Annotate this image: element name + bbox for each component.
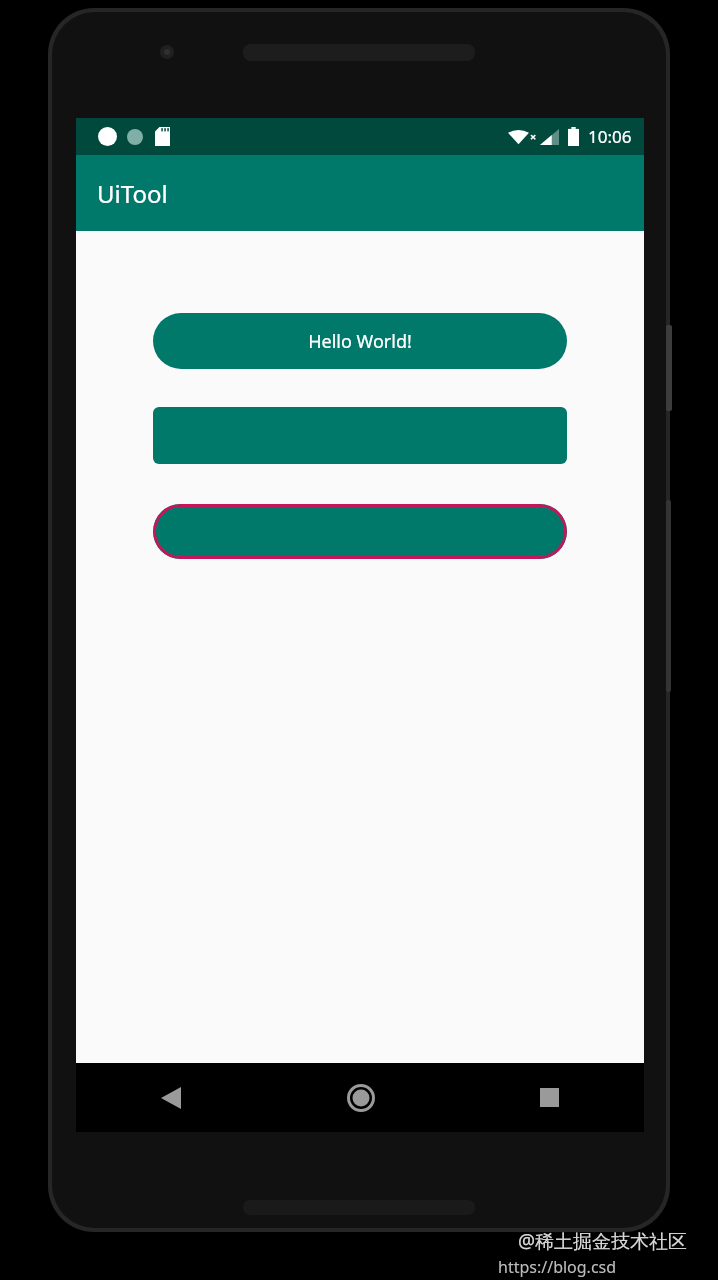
staticText: ×: [530, 129, 537, 144]
button[interactable]: Second button: [153, 407, 567, 464]
staticText: 10:06: [588, 125, 632, 148]
button[interactable]: Home: [266, 1063, 455, 1132]
button[interactable]: Back: [76, 1063, 266, 1132]
staticText: https://blog.csd: [498, 1256, 617, 1278]
staticText: @稀土掘金技术社区: [518, 1228, 688, 1254]
button[interactable]: Hello World!: [153, 313, 567, 369]
staticText: Hello World!: [308, 329, 412, 354]
staticText: UiTool: [97, 177, 168, 210]
button[interactable]: Recent apps: [455, 1063, 644, 1132]
button[interactable]: Outlined button: [153, 504, 567, 559]
